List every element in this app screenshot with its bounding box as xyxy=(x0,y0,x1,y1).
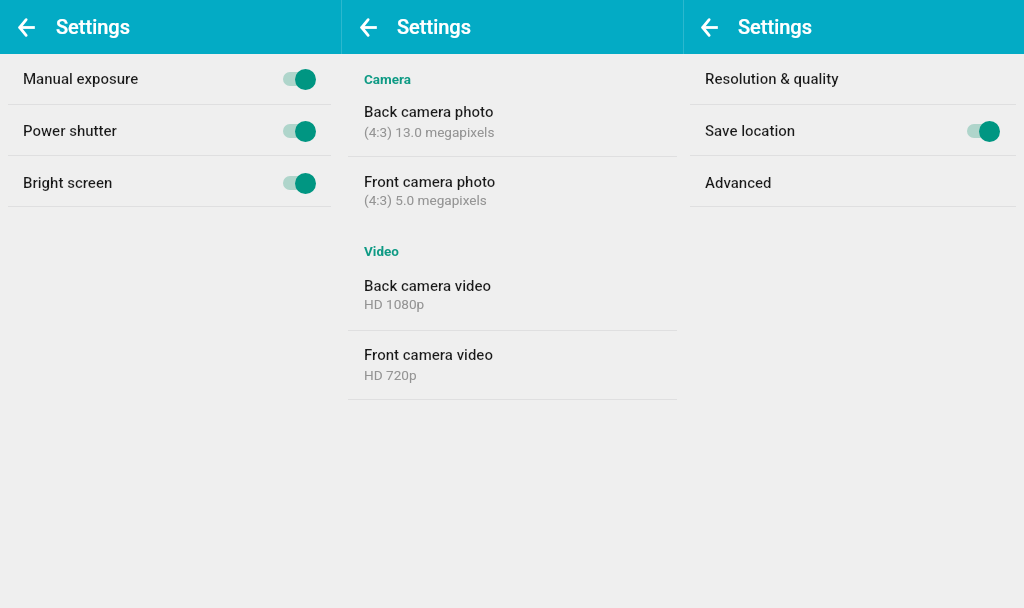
staticText: Manual exposure xyxy=(23,70,139,88)
button[interactable]: Toggle setting, on xyxy=(281,66,317,92)
staticText: Back camera photo xyxy=(364,103,494,121)
staticText: Resolution & quality xyxy=(705,70,839,88)
staticText: Settings xyxy=(56,15,131,38)
staticText: Camera xyxy=(364,71,411,87)
staticText: Front camera photo xyxy=(364,173,496,191)
staticText: HD 1080p xyxy=(364,296,425,312)
button[interactable]: Toggle setting, on xyxy=(281,170,317,196)
staticText: Back camera video xyxy=(364,277,492,295)
button[interactable]: Front camera video xyxy=(341,331,682,399)
staticText: Power shutter xyxy=(23,122,117,140)
button[interactable]: Power shutter xyxy=(0,105,341,156)
button[interactable]: Navigate back xyxy=(348,7,389,48)
button[interactable]: Manual exposure xyxy=(0,53,341,105)
staticText: HD 720p xyxy=(364,367,417,383)
button[interactable]: Bright screen xyxy=(0,156,341,207)
staticText: Video xyxy=(364,243,399,259)
button[interactable]: Back camera video xyxy=(341,268,682,330)
button[interactable]: Front camera photo xyxy=(341,157,682,222)
staticText: Save location xyxy=(705,122,796,140)
staticText: Settings xyxy=(738,15,813,38)
button[interactable]: Back camera photo xyxy=(341,95,682,156)
button[interactable]: Toggle setting, on xyxy=(281,118,317,144)
staticText: (4:3) 5.0 megapixels xyxy=(364,192,487,208)
staticText: Settings xyxy=(397,15,472,38)
button[interactable]: Save location xyxy=(682,105,1024,156)
button[interactable]: Advanced xyxy=(682,156,1024,207)
button[interactable]: Toggle setting, on xyxy=(965,118,1001,144)
staticText: (4:3) 13.0 megapixels xyxy=(364,124,495,140)
button[interactable]: Resolution & quality xyxy=(682,53,1024,105)
button[interactable]: Navigate back xyxy=(689,7,730,48)
staticText: Front camera video xyxy=(364,346,493,364)
staticText: Bright screen xyxy=(23,174,113,192)
staticText: Advanced xyxy=(705,174,772,192)
button[interactable]: Navigate back xyxy=(6,7,47,48)
